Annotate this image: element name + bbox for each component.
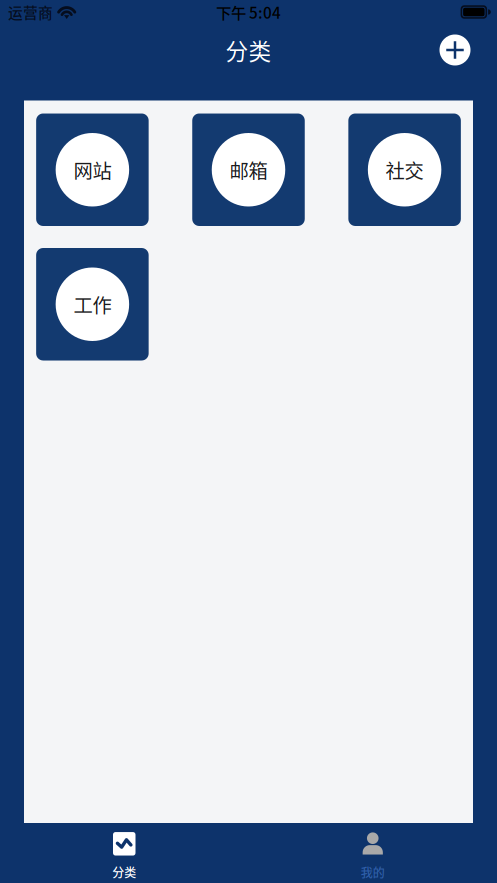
staticText: 我的: [361, 864, 385, 881]
staticText: 邮箱: [229, 156, 267, 184]
button[interactable]: 网站: [36, 113, 149, 226]
button[interactable]: 分类: [0, 823, 248, 883]
staticText: 运营商: [8, 1, 53, 23]
staticText: 社交: [386, 156, 424, 184]
staticText: 网站: [73, 156, 111, 184]
button[interactable]: 邮箱: [192, 113, 305, 226]
button[interactable]: 我的: [248, 823, 497, 883]
button[interactable]: 社交: [348, 113, 461, 226]
staticText: 分类: [112, 863, 136, 881]
button[interactable]: 工作: [36, 248, 149, 360]
button[interactable]: 添加: [433, 28, 477, 72]
staticText: 工作: [73, 290, 111, 318]
staticText: 分类: [225, 34, 271, 66]
staticText: 下午 5:04: [216, 1, 281, 23]
